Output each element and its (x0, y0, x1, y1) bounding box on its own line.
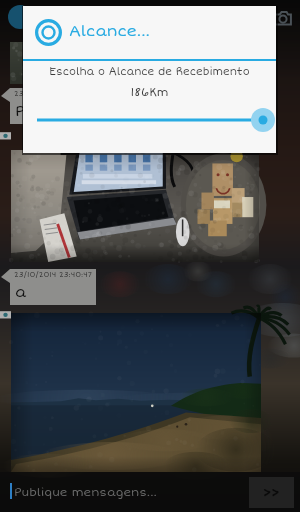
button[interactable]: 23/10/2014 23: (1, 88, 96, 124)
staticText: Publique mensagens... (14, 485, 157, 499)
button[interactable] (23, 104, 276, 144)
button[interactable]: 23/10/2014 23:40:47 (1, 269, 96, 305)
button[interactable]: Take photo (274, 9, 292, 27)
staticText: a (15, 283, 27, 301)
staticText: 186Km (23, 85, 276, 99)
staticText: 23/10/2014 23:40:47 (14, 270, 92, 279)
button[interactable]: Camera (0, 130, 11, 141)
button[interactable]: Send (249, 477, 294, 508)
button[interactable] (11, 150, 259, 262)
staticText: Alcance... (69, 22, 150, 41)
button[interactable]: Publique mensagens... (0, 472, 300, 512)
staticText: P (15, 102, 25, 120)
button[interactable] (11, 313, 261, 472)
button[interactable]: Camera (0, 309, 11, 320)
staticText: 23/10/2014 23: (14, 89, 71, 98)
button[interactable]: Alcance... (23, 6, 276, 59)
staticText: >> (263, 484, 280, 501)
staticText: Escolha o Alcance de Recebimento (23, 65, 276, 78)
button[interactable] (10, 42, 259, 84)
